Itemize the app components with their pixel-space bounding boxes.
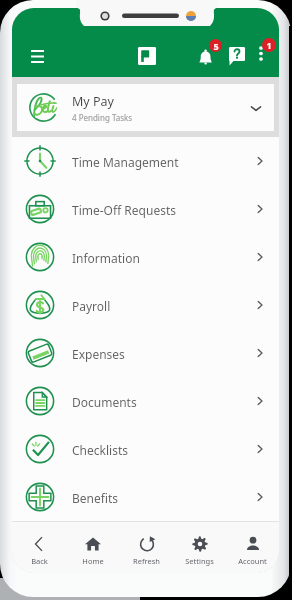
button[interactable]: More options	[249, 42, 273, 66]
staticText: Checklists	[72, 442, 255, 458]
staticText: Back	[31, 556, 48, 566]
staticText: 4 Pending Tasks	[72, 112, 133, 123]
staticText: Account	[238, 556, 267, 566]
button[interactable]: Checklists	[12, 425, 279, 473]
staticText: My Pay	[72, 93, 114, 110]
button[interactable]: Information	[12, 233, 279, 281]
staticText: Information	[72, 250, 255, 266]
button[interactable]: Payroll	[12, 281, 279, 329]
button[interactable]: Documents	[12, 377, 279, 425]
staticText: Expenses	[72, 346, 255, 362]
staticText: Refresh	[133, 556, 160, 566]
staticText: Payroll	[72, 298, 255, 314]
button[interactable]: Settings	[173, 530, 226, 566]
button[interactable]: Back	[12, 530, 66, 566]
button[interactable]: Time Management	[12, 137, 279, 185]
button[interactable]: Home	[66, 530, 120, 566]
staticText: Settings	[185, 556, 214, 566]
staticText: Time Management	[72, 154, 255, 170]
button[interactable]: Refresh	[120, 530, 173, 566]
button[interactable]: Time-Off Requests	[12, 185, 279, 233]
staticText: 1	[266, 39, 272, 51]
staticText: 5	[213, 40, 219, 52]
staticText: Time-Off Requests	[72, 202, 255, 218]
staticText: Documents	[72, 394, 255, 410]
button[interactable]: Help	[227, 44, 251, 68]
staticText: Home	[82, 556, 104, 566]
button[interactable]: Expenses	[12, 329, 279, 377]
button[interactable]: Menu	[24, 43, 50, 69]
button[interactable]: My Pay	[17, 84, 274, 131]
button[interactable]: Account	[226, 530, 279, 566]
staticText: Benefits	[72, 490, 255, 506]
button[interactable]: Notifications	[196, 44, 220, 68]
button[interactable]: Benefits	[12, 473, 279, 521]
